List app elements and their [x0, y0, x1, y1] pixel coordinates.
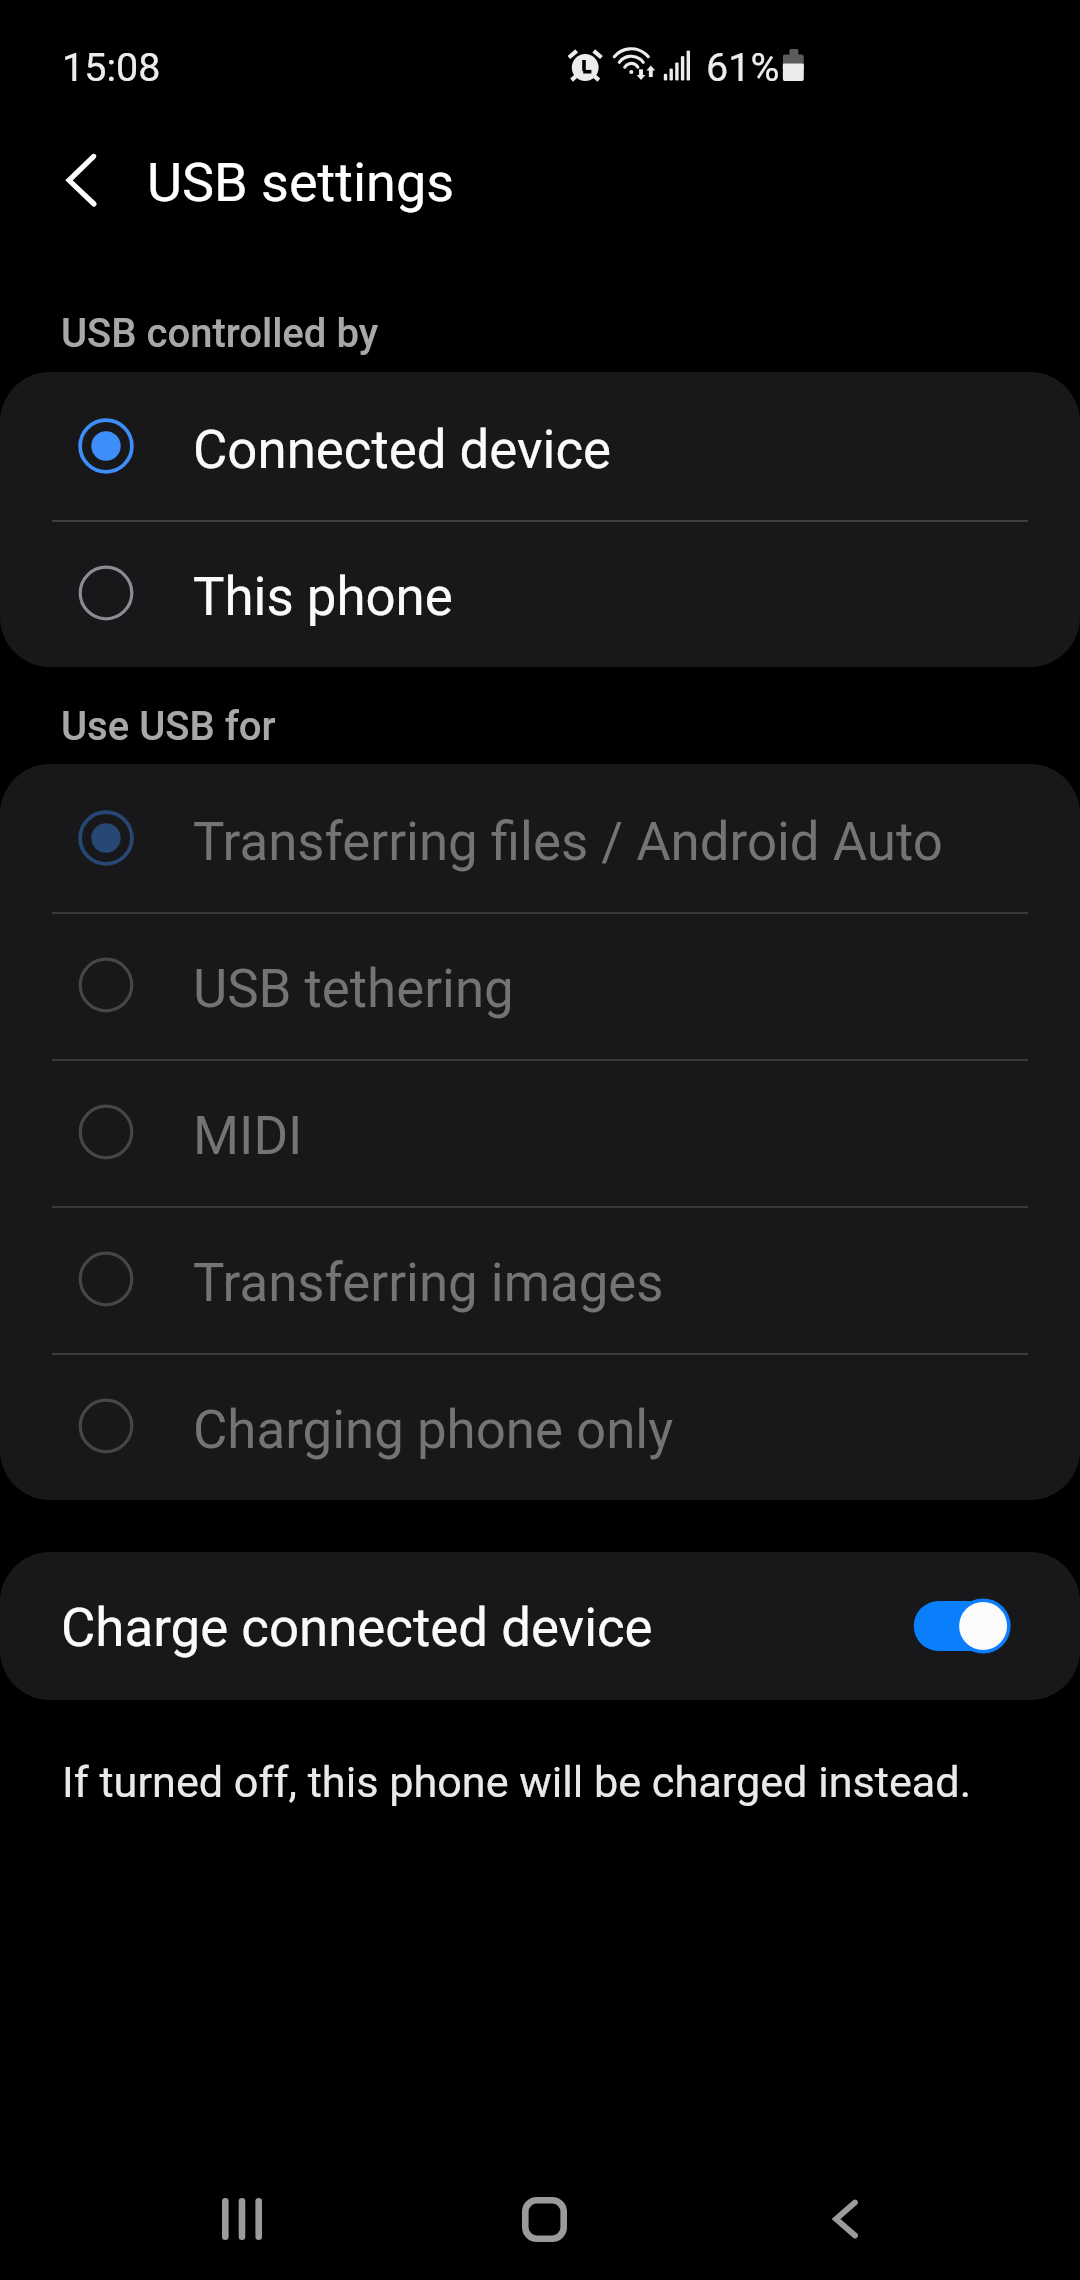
staticText: 61%: [706, 44, 780, 90]
staticText: USB controlled by: [61, 310, 379, 357]
button[interactable]: Transferring files / Android Auto: [0, 764, 1080, 911]
staticText: Use USB for: [61, 703, 276, 750]
staticText: Connected device: [193, 419, 612, 481]
staticText: Transferring files / Android Auto: [193, 811, 943, 873]
staticText: USB tethering: [193, 958, 514, 1020]
staticText: USB settings: [147, 151, 455, 214]
staticText: If turned off, this phone will be charge…: [62, 1757, 972, 1808]
button[interactable]: Connected device: [0, 372, 1080, 519]
button[interactable]: This phone: [0, 519, 1080, 666]
button[interactable]: Recent apps: [151, 2130, 331, 2280]
button[interactable]: Transferring images: [0, 1205, 1080, 1352]
button[interactable]: Navigate up: [26, 127, 134, 235]
button[interactable]: Back: [756, 2130, 936, 2280]
button[interactable]: USB tethering: [0, 911, 1080, 1058]
button[interactable]: Charging phone only: [0, 1352, 1080, 1499]
staticText: MIDI: [193, 1105, 303, 1167]
staticText: 15:08: [62, 44, 161, 90]
staticText: This phone: [193, 566, 453, 628]
staticText: Charging phone only: [193, 1399, 674, 1461]
staticText: Charge connected device: [61, 1597, 653, 1659]
staticText: Transferring images: [193, 1252, 664, 1314]
button[interactable]: Charge connected device: [0, 1552, 1080, 1700]
button[interactable]: Home: [454, 2130, 634, 2280]
button[interactable]: MIDI: [0, 1058, 1080, 1205]
